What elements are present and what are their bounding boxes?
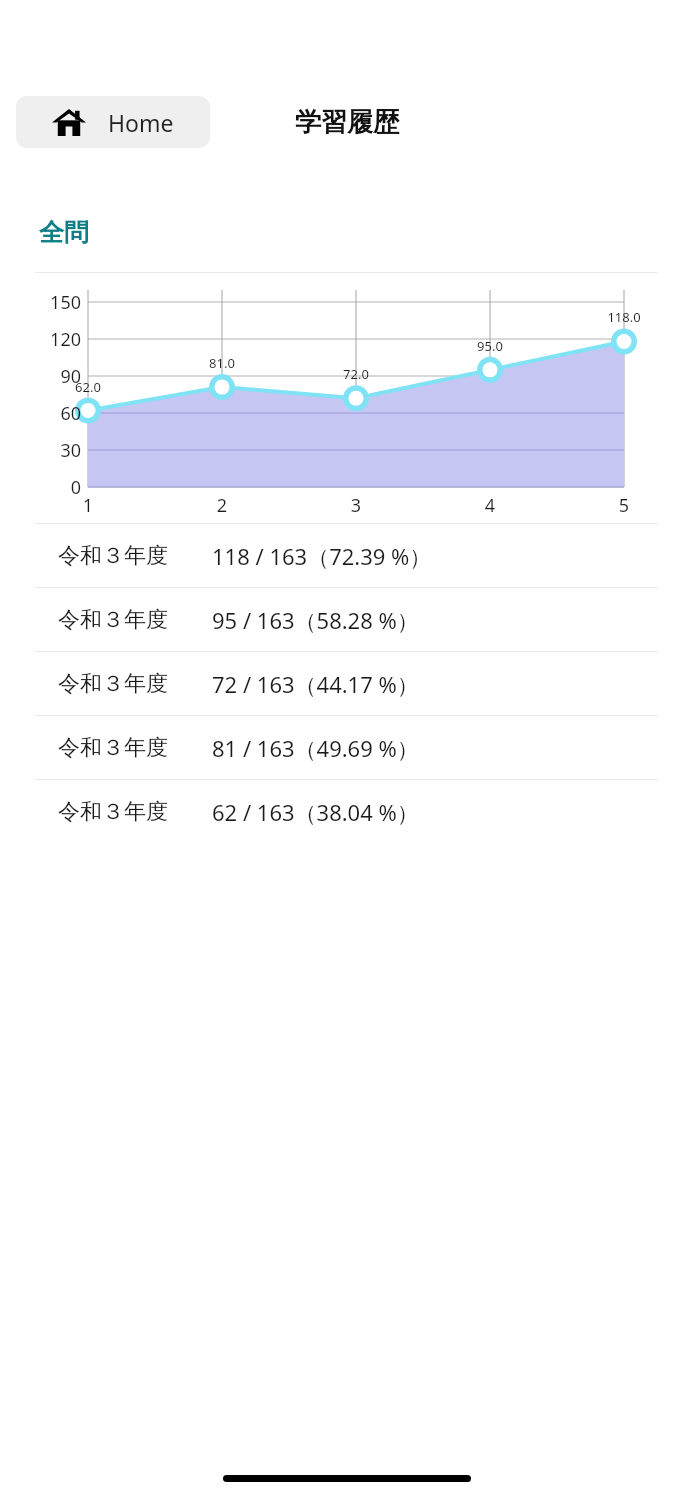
staticText: 令和３年度 bbox=[58, 542, 168, 570]
button[interactable]: 令和３年度 bbox=[21, 524, 672, 587]
staticText: 72 / 163（44.17 %） bbox=[212, 669, 419, 699]
staticText: 令和３年度 bbox=[58, 798, 168, 826]
staticText: 0 bbox=[35, 475, 81, 500]
staticText: 令和３年度 bbox=[58, 670, 168, 698]
staticText: 62 / 163（38.04 %） bbox=[212, 797, 419, 827]
staticText: 令和３年度 bbox=[58, 606, 168, 634]
button[interactable]: 令和３年度 bbox=[21, 716, 672, 779]
button[interactable]: Home bbox=[16, 96, 210, 148]
staticText: 3 bbox=[336, 493, 376, 518]
staticText: 学習履歴 bbox=[295, 106, 399, 139]
staticText: 81.0 bbox=[196, 354, 248, 372]
staticText: 81 / 163（49.69 %） bbox=[212, 733, 419, 763]
staticText: 95 / 163（58.28 %） bbox=[212, 605, 419, 635]
staticText: 4 bbox=[470, 493, 510, 518]
button[interactable]: 令和３年度 bbox=[21, 780, 672, 843]
staticText: 120 bbox=[35, 327, 81, 352]
staticText: 90 bbox=[35, 364, 81, 389]
staticText: 60 bbox=[35, 401, 81, 426]
staticText: 118.0 bbox=[598, 308, 650, 326]
button[interactable]: 令和３年度 bbox=[21, 652, 672, 715]
staticText: Home bbox=[108, 107, 174, 138]
staticText: 118 / 163（72.39 %） bbox=[212, 541, 432, 571]
staticText: 2 bbox=[202, 493, 242, 518]
staticText: 5 bbox=[604, 493, 644, 518]
staticText: 30 bbox=[35, 438, 81, 463]
staticText: 150 bbox=[35, 290, 81, 315]
staticText: 1 bbox=[68, 493, 108, 518]
staticText: 令和３年度 bbox=[58, 734, 168, 762]
staticText: 72.0 bbox=[330, 365, 382, 383]
button[interactable]: 令和３年度 bbox=[21, 588, 672, 651]
staticText: 95.0 bbox=[464, 337, 516, 355]
staticText: 全問 bbox=[39, 217, 89, 248]
staticText: 62.0 bbox=[62, 378, 114, 396]
